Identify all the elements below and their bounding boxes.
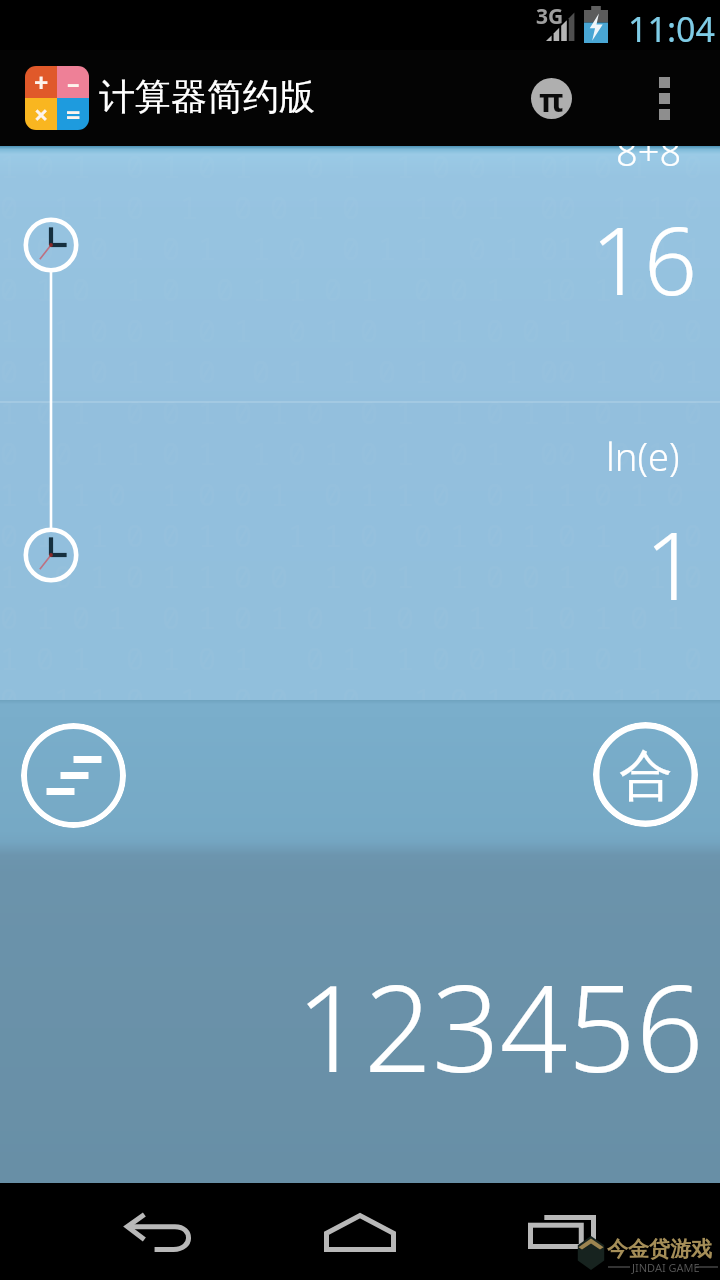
button[interactable]: Recent apps [512, 1197, 612, 1267]
staticText: 1 0 1 0 1 1 0 0 1 0 1 1 0 0 1 0 1 0 1 1 … [0, 556, 720, 597]
button[interactable]: Combine [593, 722, 698, 827]
staticText: 计算器简约版 [99, 74, 315, 119]
staticText: 1 [645, 501, 699, 628]
staticText: 0 1 0 1 1 0 0 1 1 0 1 0 1 00 1 0 1 1 0 0… [0, 351, 720, 392]
staticText: 0 1 0 1 0 0 1 1 0 1 0 0 1 10 1 0 1 0 0 1… [0, 269, 720, 310]
staticText: π [539, 78, 564, 118]
button[interactable]: More options [620, 54, 708, 142]
staticText: 3G [536, 2, 564, 31]
staticText: ln(e) [606, 430, 680, 482]
staticText: = [66, 97, 81, 129]
staticText: 合 [619, 742, 673, 810]
staticText: 1 0 1 0 1 0 1 0 1 1 0 0 1 01 0 1 0 1 0 1… [0, 146, 720, 187]
button[interactable]: Constants [507, 54, 595, 142]
staticText: 123456 [296, 945, 704, 1107]
staticText: + [34, 66, 49, 97]
staticText: 1 0 1 0 0 1 0 1 0 0 1 1 0 1 1 0 1 0 0 1 … [0, 392, 720, 433]
staticText: 1 0 1 0 1 0 0 1 0 1 1 0 0 1 1 0 1 0 1 0 … [0, 474, 720, 515]
staticText: 0 1 1 0 1 0 0 1 0 1 0 1 00 1 1 0 1 0 0 1… [0, 679, 720, 703]
button[interactable]: Home [310, 1197, 410, 1267]
staticText: 11:04 [628, 6, 715, 52]
staticText: 8+8 [616, 125, 682, 177]
staticText: 1 0 0 1 0 1 1 0 0 1 1 0 1 01 0 0 1 0 1 1… [0, 228, 720, 269]
staticText: 16 [591, 196, 698, 323]
staticText: 0 1 1 0 1 0 0 1 0 1 0 1 00 1 1 0 1 0 0 1… [0, 187, 720, 228]
staticText: 0 1 1 0 0 1 0 1 1 0 0 1 0 1 0 1 1 0 0 1 … [0, 515, 720, 556]
button[interactable]: Back [110, 1197, 210, 1267]
button[interactable]: History [21, 723, 126, 828]
staticText: 今金贷游戏 [607, 1236, 712, 1262]
staticText: JINDAI GAME [632, 1260, 700, 1275]
staticText: 0 0 1 1 0 1 1 0 1 0 1 0 1 00 0 1 1 0 1 1… [0, 433, 720, 474]
staticText: × [34, 97, 49, 129]
staticText: – [67, 66, 80, 97]
staticText: 1 1 0 0 1 0 1 0 1 0 1 1 0 0 1 1 0 0 1 0 … [0, 310, 720, 351]
